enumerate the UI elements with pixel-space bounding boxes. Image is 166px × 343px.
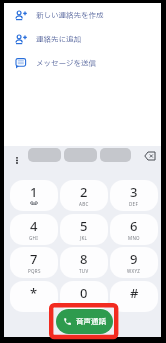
staticText: 連絡先に追加 — [36, 34, 81, 45]
staticText: 3 — [130, 183, 138, 201]
staticText: PQRS — [28, 268, 41, 274]
staticText: 2 — [80, 183, 88, 201]
button[interactable]: メッセージを送信 — [4, 51, 161, 75]
staticText: GHI — [29, 235, 39, 241]
staticText: 1 — [30, 183, 38, 201]
button[interactable]: 7 — [10, 247, 58, 278]
staticText: 4 — [30, 217, 38, 235]
button[interactable]: 3 — [110, 180, 158, 211]
staticText: 5 — [80, 217, 88, 235]
staticText: JKL — [80, 235, 88, 241]
staticText: 新しい連絡先を作成 — [36, 10, 104, 21]
button[interactable]: # — [110, 281, 158, 312]
button[interactable]: * — [10, 281, 58, 312]
button[interactable]: 新しい連絡先を作成 — [4, 3, 161, 27]
button[interactable]: 2 — [60, 180, 108, 211]
staticText: + — [83, 302, 86, 308]
staticText: メッセージを送信 — [36, 58, 96, 69]
button[interactable]: 8 — [60, 247, 108, 278]
button[interactable]: 5 — [60, 214, 108, 245]
button[interactable]: 9 — [110, 247, 158, 278]
staticText: # — [130, 284, 139, 302]
staticText: 7 — [30, 250, 38, 268]
staticText: 6 — [130, 217, 138, 235]
staticText: 音声通話 — [76, 316, 106, 327]
button[interactable]: 連絡先に追加 — [4, 27, 161, 51]
staticText: MNO — [128, 235, 140, 241]
staticText: 9 — [130, 250, 138, 268]
staticText: 8 — [80, 250, 88, 268]
button[interactable]: 音声通話 — [56, 309, 113, 334]
button[interactable]: 6 — [110, 214, 158, 245]
staticText: WXYZ — [127, 268, 141, 274]
staticText: 0 — [80, 284, 88, 302]
button[interactable]: 4 — [10, 214, 58, 245]
button[interactable]: 0 — [60, 281, 108, 312]
staticText: * — [30, 284, 38, 302]
staticText: DEF — [129, 201, 139, 207]
staticText: TUV — [79, 268, 89, 274]
staticText: ABC — [79, 201, 89, 207]
button[interactable]: 1 — [10, 180, 58, 211]
